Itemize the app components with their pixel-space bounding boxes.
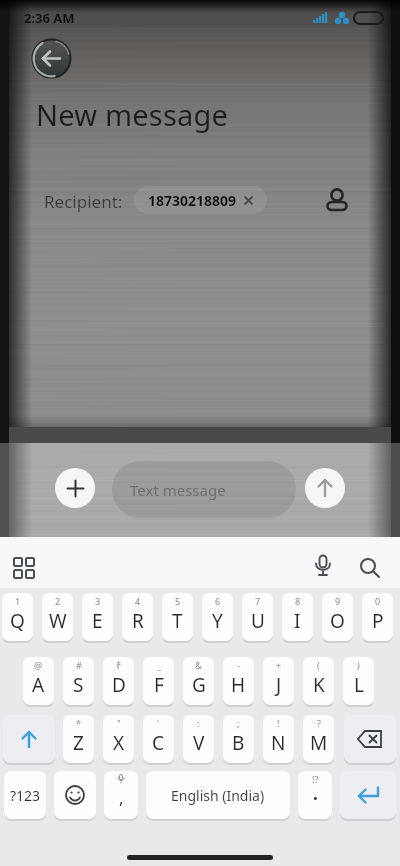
staticText: 1 <box>15 595 21 607</box>
button[interactable]: !? <box>298 771 332 819</box>
staticText: J <box>276 672 282 698</box>
staticText: R <box>132 608 144 634</box>
staticText: M <box>310 730 328 756</box>
button[interactable]: 1 <box>2 593 33 641</box>
staticText: !? <box>312 773 319 785</box>
button[interactable]: 4 <box>122 593 153 641</box>
staticText: G <box>192 672 206 698</box>
button[interactable] <box>55 468 95 508</box>
staticText: F <box>154 672 164 698</box>
button[interactable]: English (India) <box>146 771 290 819</box>
button[interactable]: _ <box>143 657 174 705</box>
button[interactable]: 0 <box>362 593 393 641</box>
staticText: " <box>117 717 121 729</box>
staticText: ' <box>157 717 160 729</box>
button[interactable]: + <box>263 657 294 705</box>
staticText: W <box>49 608 67 634</box>
staticText: V <box>193 730 205 756</box>
staticText: Z <box>73 730 84 756</box>
button[interactable]: 9 <box>322 593 353 641</box>
button[interactable]: 5 <box>162 593 193 641</box>
button[interactable]: 18730218809 <box>134 186 267 214</box>
staticText: 2 <box>55 595 61 607</box>
staticText: ? <box>317 717 321 729</box>
button[interactable] <box>31 38 72 79</box>
staticText: 8 <box>295 595 301 607</box>
staticText: S <box>73 672 84 698</box>
staticText: @ <box>34 659 43 671</box>
button[interactable]: & <box>183 657 214 705</box>
staticText: ( <box>317 659 320 671</box>
button[interactable]: 8 <box>282 593 313 641</box>
staticText: B <box>232 730 245 756</box>
staticText: - <box>237 659 240 671</box>
staticText: Recipient: <box>44 190 123 213</box>
button[interactable]: ! <box>263 715 294 763</box>
button[interactable] <box>305 468 345 508</box>
button[interactable]: 2 <box>42 593 73 641</box>
button[interactable] <box>340 771 396 819</box>
button[interactable]: ; <box>223 715 254 763</box>
staticText: ; <box>237 717 240 729</box>
staticText: E <box>92 608 103 634</box>
button[interactable]: " <box>103 715 134 763</box>
staticText: X <box>113 730 125 756</box>
button[interactable]: ) <box>343 657 374 705</box>
staticText: T <box>172 608 183 634</box>
button[interactable]: ( <box>303 657 334 705</box>
staticText: , <box>119 786 124 809</box>
staticText: 0 <box>375 595 381 607</box>
button[interactable]: Text message <box>112 461 296 518</box>
staticText: ?123 <box>10 786 41 805</box>
button[interactable] <box>3 715 55 763</box>
button[interactable]: 7 <box>242 593 273 641</box>
staticText: ) <box>357 659 360 671</box>
button[interactable]: # <box>63 657 94 705</box>
button[interactable]: ?123 <box>4 771 46 819</box>
button[interactable] <box>312 554 334 582</box>
staticText: O <box>330 608 345 634</box>
button[interactable]: @ <box>23 657 54 705</box>
staticText: K <box>313 672 325 698</box>
staticText: 5 <box>175 595 181 607</box>
staticText: Y <box>212 608 223 634</box>
staticText: L <box>354 672 364 698</box>
staticText: 4 <box>135 595 141 607</box>
staticText: * <box>76 717 81 729</box>
staticText: I <box>294 608 301 634</box>
button[interactable]: * <box>63 715 94 763</box>
staticText: 7 <box>255 595 261 607</box>
staticText: H <box>231 672 246 698</box>
button[interactable]: 6 <box>202 593 233 641</box>
staticText: Text message <box>130 480 226 500</box>
staticText: 18730218809 <box>148 191 237 210</box>
button[interactable]: 3 <box>82 593 113 641</box>
staticText: ₹ <box>116 659 122 671</box>
button[interactable] <box>12 556 36 580</box>
button[interactable]: , <box>104 771 138 819</box>
button[interactable] <box>358 556 382 580</box>
staticText: D <box>112 672 126 698</box>
staticText: 3 <box>95 595 101 607</box>
staticText: . <box>313 782 318 805</box>
button[interactable] <box>322 183 354 215</box>
staticText: 9 <box>335 595 341 607</box>
staticText: : <box>197 717 200 729</box>
button[interactable] <box>344 715 396 763</box>
staticText: U <box>251 608 265 634</box>
staticText: A <box>32 672 45 698</box>
staticText: P <box>372 608 384 634</box>
button[interactable]: - <box>223 657 254 705</box>
staticText: New message <box>36 95 229 134</box>
staticText: & <box>195 659 202 671</box>
staticText: C <box>152 730 165 756</box>
staticText: N <box>271 730 286 756</box>
button[interactable]: ' <box>143 715 174 763</box>
staticText: 6 <box>215 595 221 607</box>
staticText: ! <box>277 717 280 729</box>
staticText: English (India) <box>171 786 265 805</box>
button[interactable]: ? <box>303 715 334 763</box>
button[interactable]: : <box>183 715 214 763</box>
button[interactable]: ₹ <box>103 657 134 705</box>
button[interactable] <box>54 771 96 819</box>
